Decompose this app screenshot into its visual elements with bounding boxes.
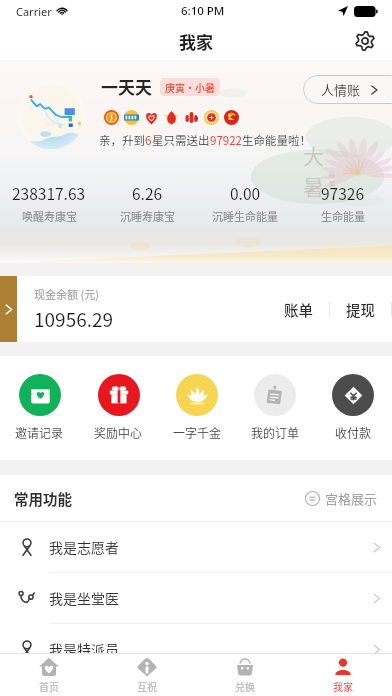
staticText: 6.26 [132, 182, 163, 204]
staticText: 亲，升到 [99, 132, 145, 149]
staticText: 一天天 [101, 74, 152, 99]
staticText: 我家 [333, 679, 353, 693]
staticText: 6 [145, 132, 152, 149]
staticText: 沉睡生命能量 [212, 208, 278, 224]
button[interactable]: 互祝 [98, 654, 196, 696]
staticText: 邀请记录 [15, 424, 64, 441]
staticText: 星只需送出 [152, 132, 210, 149]
staticText: 97922 [210, 132, 242, 149]
staticText: 兑换 [235, 679, 255, 693]
staticText: 收付款 [335, 424, 372, 441]
staticText: 暑 [303, 171, 324, 201]
staticText: 大 [303, 140, 324, 170]
button[interactable]: Expand wallet [0, 276, 17, 342]
staticText: 我的订单 [251, 424, 300, 441]
staticText: 生命能量啦！ [242, 132, 311, 149]
button[interactable]: 兑换 [196, 654, 294, 696]
button[interactable]: 首页 [0, 654, 98, 696]
staticText: 我家 [179, 29, 213, 54]
staticText: 现金余额 (元) [34, 286, 99, 302]
staticText: Carrier [16, 4, 52, 19]
staticText: 沉睡寿康宝 [120, 208, 175, 224]
button[interactable]: 我家 [294, 654, 392, 696]
button[interactable]: 我是坐堂医 [0, 573, 392, 623]
staticText: 睡 [329, 170, 336, 179]
button[interactable]: 我的订单 [236, 374, 314, 441]
staticText: 我是坐堂医 [49, 588, 119, 608]
staticText: 奖励中心 [94, 424, 143, 441]
button[interactable]: 人情账 [303, 75, 392, 104]
staticText: 提现 [346, 299, 375, 320]
button[interactable]: 一字千金 [158, 374, 236, 441]
button[interactable]: 宫格展示 [305, 489, 378, 508]
staticText: 我是志愿者 [49, 537, 119, 557]
button[interactable]: 我是特派员 [0, 624, 392, 674]
staticText: 一字千金 [173, 424, 222, 441]
staticText: 庚寅·小暑 [165, 80, 215, 94]
button[interactable]: 邀请记录 [0, 374, 79, 441]
staticText: 生命能量 [321, 208, 365, 224]
button[interactable]: 收付款 [314, 374, 392, 441]
staticText: 人情账 [321, 80, 361, 99]
button[interactable]: 奖励中心 [79, 374, 158, 441]
button[interactable]: 账单 [268, 289, 329, 330]
staticText: 97326 [321, 182, 365, 204]
staticText: 10956.29 [34, 305, 114, 333]
button[interactable]: 我是志愿者 [0, 522, 392, 572]
staticText: 唤醒寿康宝 [22, 208, 77, 224]
button[interactable]: Settings [350, 26, 380, 56]
staticText: 首页 [39, 679, 59, 693]
staticText: 238317.63 [12, 182, 86, 204]
staticText: 宫格展示 [325, 489, 378, 508]
staticText: 0.00 [230, 182, 261, 204]
staticText: 互祝 [137, 679, 157, 693]
staticText: 我是特派员 [49, 639, 119, 659]
staticText: 6:10 PM [181, 3, 225, 19]
staticText: 常用功能 [14, 488, 72, 509]
staticText: 账单 [284, 299, 313, 320]
staticText: 莲 [329, 179, 336, 188]
button[interactable]: 提现 [330, 289, 391, 330]
